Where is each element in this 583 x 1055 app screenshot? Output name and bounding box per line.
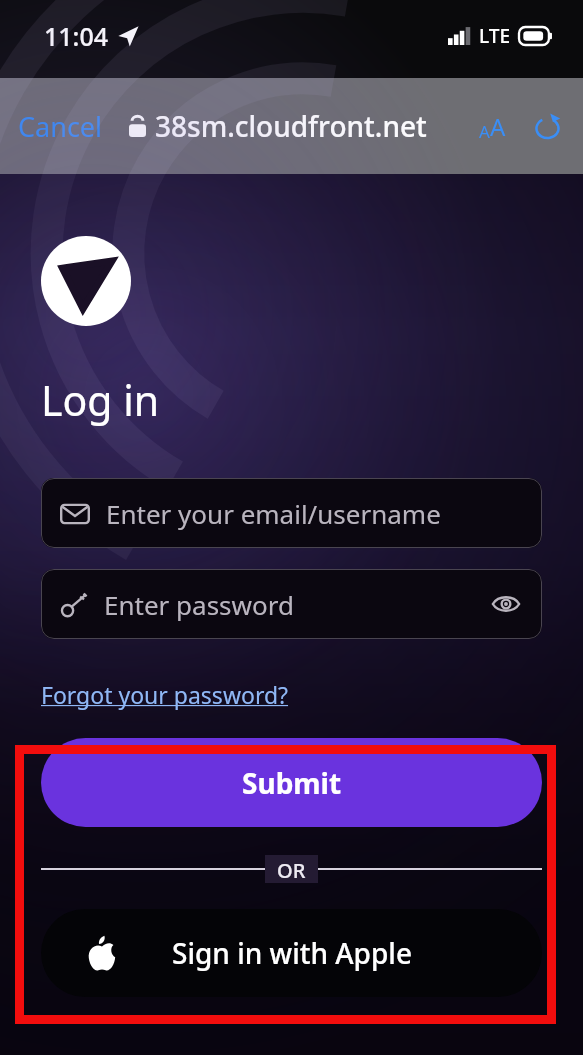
button[interactable]: Text size — [473, 100, 512, 153]
staticText: A — [490, 110, 506, 143]
button[interactable]: Show password — [488, 586, 524, 622]
staticText: Enter your email/username — [106, 496, 441, 531]
button[interactable]: Reload — [528, 107, 567, 146]
staticText: OR — [277, 857, 306, 881]
button[interactable]: Enter password — [41, 569, 542, 639]
other: App logo — [41, 236, 131, 326]
staticText: Forgot your password? — [41, 679, 289, 710]
staticText: Submit — [242, 764, 342, 802]
staticText: 11:04 — [44, 19, 109, 53]
button[interactable]: Sign in with Apple — [41, 909, 542, 997]
staticText: Log in — [41, 372, 160, 428]
staticText: A — [479, 120, 490, 143]
staticText: Sign in with Apple — [172, 934, 412, 972]
button[interactable]: Submit — [41, 738, 542, 827]
staticText: LTE — [479, 23, 511, 49]
button[interactable]: Cancel — [0, 96, 113, 157]
staticText: Enter password — [104, 587, 294, 622]
staticText: 38sm.cloudfront.net — [155, 107, 427, 145]
button[interactable]: Forgot your password? — [41, 679, 289, 710]
staticText: Cancel — [18, 108, 103, 145]
button[interactable]: Enter your email/username — [41, 478, 542, 548]
